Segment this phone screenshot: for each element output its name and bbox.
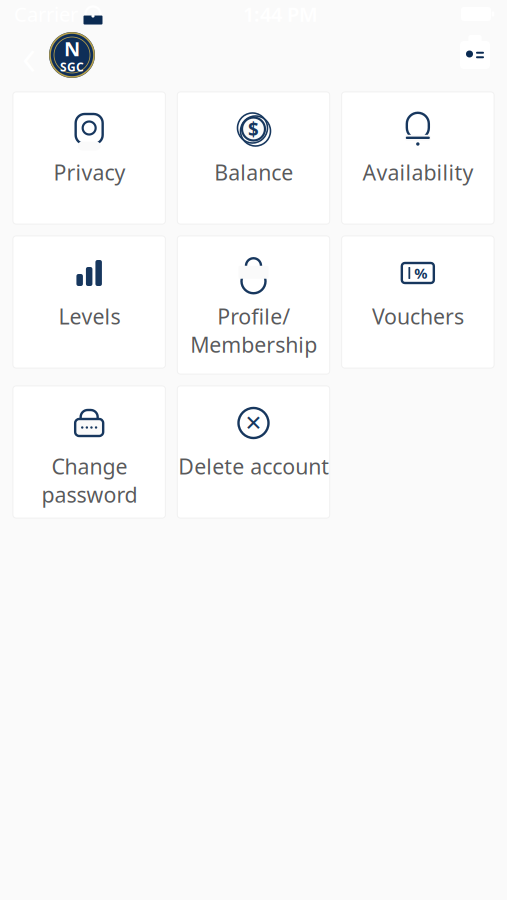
staticText: Balance — [214, 158, 293, 186]
staticText: Profile/ Membership — [190, 302, 317, 359]
button[interactable]: % — [342, 236, 494, 368]
button[interactable]: Levels — [13, 236, 165, 368]
staticText: ✕ — [244, 411, 262, 435]
button[interactable]: Privacy — [13, 92, 165, 224]
button[interactable]: Change password — [13, 386, 165, 518]
staticText: Change password — [41, 452, 137, 509]
button[interactable]: ✕ — [177, 386, 330, 518]
staticText: Availability — [362, 158, 473, 186]
button[interactable]: $ — [177, 92, 330, 224]
staticText: Delete account — [178, 452, 329, 480]
staticText: $ — [248, 117, 259, 141]
staticText: Privacy — [53, 158, 125, 186]
button[interactable]: Availability — [342, 92, 494, 224]
staticText: SGC — [60, 59, 84, 75]
staticText: Vouchers — [372, 302, 464, 330]
staticText: % — [414, 263, 427, 283]
staticText: Levels — [58, 302, 120, 330]
staticText: N — [64, 35, 80, 62]
button[interactable]: Membership card — [453, 33, 497, 77]
button[interactable]: Profile/ Membership — [177, 236, 330, 374]
